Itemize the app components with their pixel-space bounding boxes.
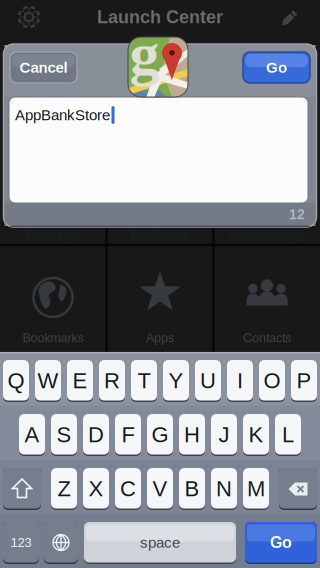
staticText: C: [120, 476, 136, 501]
button[interactable]: Cancel: [10, 52, 77, 83]
button[interactable]: S: [51, 414, 77, 456]
button[interactable]: Bookmarks: [0, 245, 105, 351]
staticText: V: [152, 476, 167, 501]
staticText: 12: [289, 207, 305, 222]
staticText: Z: [57, 476, 70, 501]
button[interactable]: Next keyboard: [44, 522, 78, 564]
button[interactable]: Contacts: [214, 245, 319, 351]
staticText: Cancel: [19, 59, 67, 76]
button[interactable]: W: [35, 360, 61, 402]
staticText: X: [88, 476, 103, 501]
staticText: M: [247, 476, 265, 501]
button[interactable]: X: [83, 468, 109, 510]
staticText: F: [121, 422, 134, 447]
button[interactable]: A: [19, 414, 45, 456]
staticText: I: [237, 368, 243, 393]
button[interactable]: E: [67, 360, 93, 402]
button[interactable]: B: [179, 468, 205, 510]
staticText: Apps: [146, 331, 174, 345]
button[interactable]: N: [211, 468, 237, 510]
staticText: Q: [7, 368, 24, 393]
button[interactable]: Go: [243, 52, 310, 83]
button[interactable]: Delete: [279, 468, 317, 510]
button[interactable]: Go: [245, 522, 317, 564]
staticText: AppBankStore: [15, 107, 110, 123]
staticText: Go: [270, 534, 292, 551]
staticText: O: [263, 368, 280, 393]
staticText: Contacts: [243, 331, 291, 345]
staticText: N: [216, 476, 232, 501]
staticText: H: [184, 422, 200, 447]
button[interactable]: K: [243, 414, 269, 456]
button[interactable]: G: [147, 414, 173, 456]
button[interactable]: F: [115, 414, 141, 456]
staticText: L: [282, 422, 294, 447]
button[interactable]: C: [115, 468, 141, 510]
button[interactable]: Apps: [107, 245, 212, 351]
staticText: A: [24, 422, 39, 447]
button[interactable]: O: [259, 360, 285, 402]
staticText: Go: [266, 59, 287, 76]
staticText: R: [104, 368, 120, 393]
button[interactable]: V: [147, 468, 173, 510]
button[interactable]: Message text: [9, 97, 308, 203]
button[interactable]: L: [275, 414, 301, 456]
staticText: Launch Center: [97, 7, 223, 27]
button[interactable]: U: [195, 360, 221, 402]
button[interactable]: Settings: [0, 0, 62, 34]
staticText: D: [88, 422, 104, 447]
staticText: E: [72, 368, 87, 393]
staticText: P: [296, 368, 311, 393]
button[interactable]: P: [291, 360, 317, 402]
staticText: g: [129, 20, 159, 87]
button[interactable]: Y: [163, 360, 189, 402]
button[interactable]: I: [227, 360, 253, 402]
staticText: T: [137, 368, 150, 393]
button[interactable]: M: [243, 468, 269, 510]
button[interactable]: Shift: [3, 468, 41, 510]
button[interactable]: J: [211, 414, 237, 456]
staticText: K: [248, 422, 263, 447]
button[interactable]: space: [84, 522, 236, 564]
staticText: 123: [10, 535, 31, 550]
staticText: J: [218, 422, 229, 447]
staticText: space: [140, 534, 180, 551]
staticText: W: [37, 368, 58, 393]
button[interactable]: Edit: [270, 0, 320, 34]
staticText: S: [56, 422, 71, 447]
staticText: Bookmarks: [22, 331, 83, 345]
staticText: Y: [168, 368, 183, 393]
button[interactable]: R: [99, 360, 125, 402]
staticText: B: [184, 476, 199, 501]
button[interactable]: D: [83, 414, 109, 456]
staticText: G: [151, 422, 168, 447]
button[interactable]: T: [131, 360, 157, 402]
button[interactable]: Z: [51, 468, 77, 510]
button[interactable]: Numbers: [3, 522, 39, 564]
button[interactable]: H: [179, 414, 205, 456]
staticText: U: [200, 368, 216, 393]
button[interactable]: Q: [3, 360, 29, 402]
